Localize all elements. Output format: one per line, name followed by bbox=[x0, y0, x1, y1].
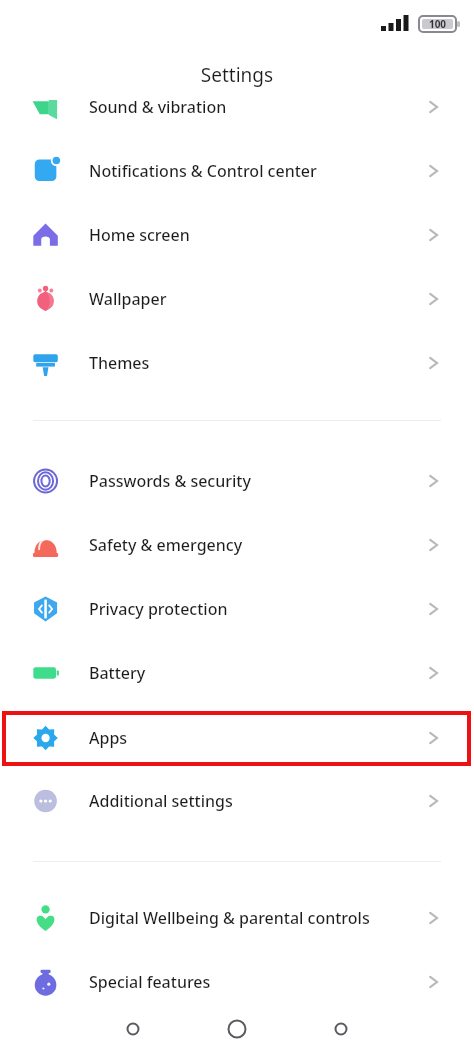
button[interactable]: Safety & emergency bbox=[0, 518, 474, 572]
staticText: Battery bbox=[89, 662, 146, 684]
button[interactable]: Battery bbox=[0, 646, 474, 700]
staticText: Sound & vibration bbox=[89, 96, 227, 118]
button[interactable]: Recents bbox=[113, 1009, 153, 1049]
staticText: Wallpaper bbox=[89, 288, 167, 310]
button[interactable]: Privacy protection bbox=[0, 582, 474, 636]
staticText: Home screen bbox=[89, 224, 190, 246]
button[interactable]: Back bbox=[321, 1009, 361, 1049]
button[interactable]: Passwords & security bbox=[0, 454, 474, 508]
button[interactable]: Home bbox=[217, 1009, 257, 1049]
button[interactable]: Wallpaper bbox=[0, 272, 474, 326]
button[interactable]: Special features bbox=[0, 955, 474, 1009]
staticText: Passwords & security bbox=[89, 470, 251, 492]
button[interactable]: Digital Wellbeing & parental controls bbox=[0, 891, 474, 945]
button[interactable]: Home screen bbox=[0, 208, 474, 262]
staticText: 100 bbox=[421, 17, 454, 31]
button[interactable]: Additional settings bbox=[0, 774, 474, 828]
staticText: Special features bbox=[89, 971, 211, 993]
staticText: Settings bbox=[0, 62, 474, 88]
button[interactable]: Sound & vibration bbox=[0, 80, 474, 134]
staticText: Themes bbox=[89, 352, 150, 374]
staticText: Notifications & Control center bbox=[89, 160, 317, 182]
button[interactable]: Notifications & Control center bbox=[0, 144, 474, 198]
staticText: Settings bbox=[0, 62, 474, 88]
staticText: Digital Wellbeing & parental controls bbox=[89, 907, 370, 929]
staticText: Safety & emergency bbox=[89, 534, 243, 556]
staticText: Privacy protection bbox=[89, 598, 228, 620]
staticText: Apps bbox=[89, 727, 128, 749]
button[interactable]: Themes bbox=[0, 336, 474, 390]
button[interactable]: Apps bbox=[0, 711, 474, 765]
staticText: Additional settings bbox=[89, 790, 233, 812]
staticText: 100 bbox=[421, 17, 454, 31]
